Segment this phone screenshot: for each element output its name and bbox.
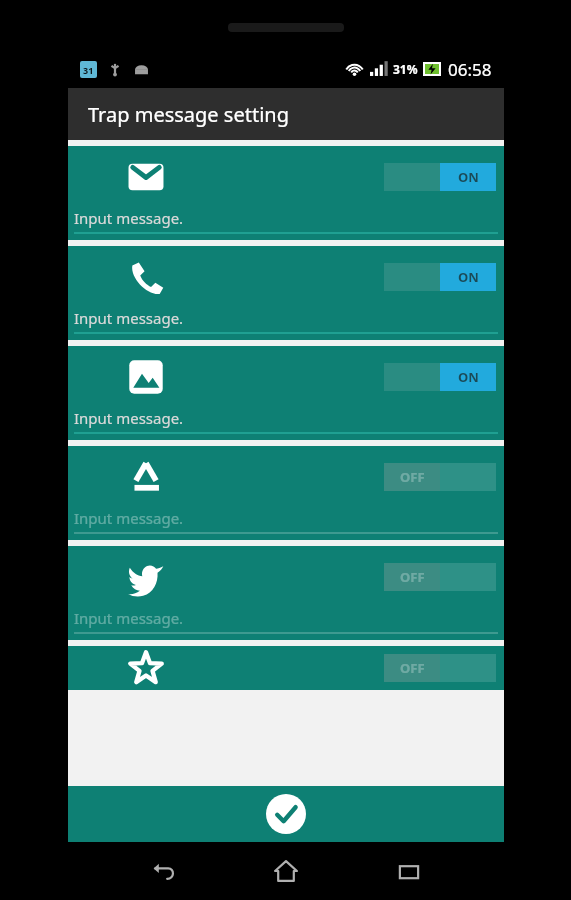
button[interactable]: Enabled [384,163,496,191]
staticText: ON [458,168,479,186]
button[interactable]: Input message. [74,608,498,634]
button[interactable]: Enabled [384,363,496,391]
button[interactable]: Input message. [74,208,498,234]
staticText: 06:58 [448,58,492,81]
button[interactable]: Input message. [74,408,498,434]
button[interactable]: Input message. [74,308,498,334]
staticText: Trap message setting [88,101,289,128]
button[interactable]: Back [135,843,191,899]
button[interactable]: Disabled [384,463,496,491]
staticText: ON [458,368,479,386]
staticText: Input message. [74,408,184,428]
button[interactable]: Recent apps [381,843,437,899]
button[interactable]: Enabled [68,146,504,240]
staticText: Input message. [74,508,184,528]
staticText: 31 [83,64,94,76]
button[interactable]: Enabled [68,346,504,440]
button[interactable]: Disabled [68,646,504,690]
staticText: ON [458,268,479,286]
staticText: Input message. [74,608,184,628]
button[interactable]: Input message. [74,508,498,534]
button[interactable]: Disabled [384,654,496,682]
button[interactable]: Trap message setting [68,88,504,140]
staticText: Input message. [74,308,184,328]
staticText: 31% [393,61,418,77]
button[interactable]: Disabled [68,546,504,640]
button[interactable]: Home [258,843,314,899]
button[interactable]: Disabled [384,563,496,591]
button[interactable]: Enabled [384,263,496,291]
staticText: OFF [400,568,425,586]
staticText: Input message. [74,208,184,228]
button[interactable]: Confirm [68,786,504,842]
staticText: OFF [400,468,425,486]
staticText: OFF [400,659,425,677]
button[interactable]: Disabled [68,446,504,540]
button[interactable]: Enabled [68,246,504,340]
